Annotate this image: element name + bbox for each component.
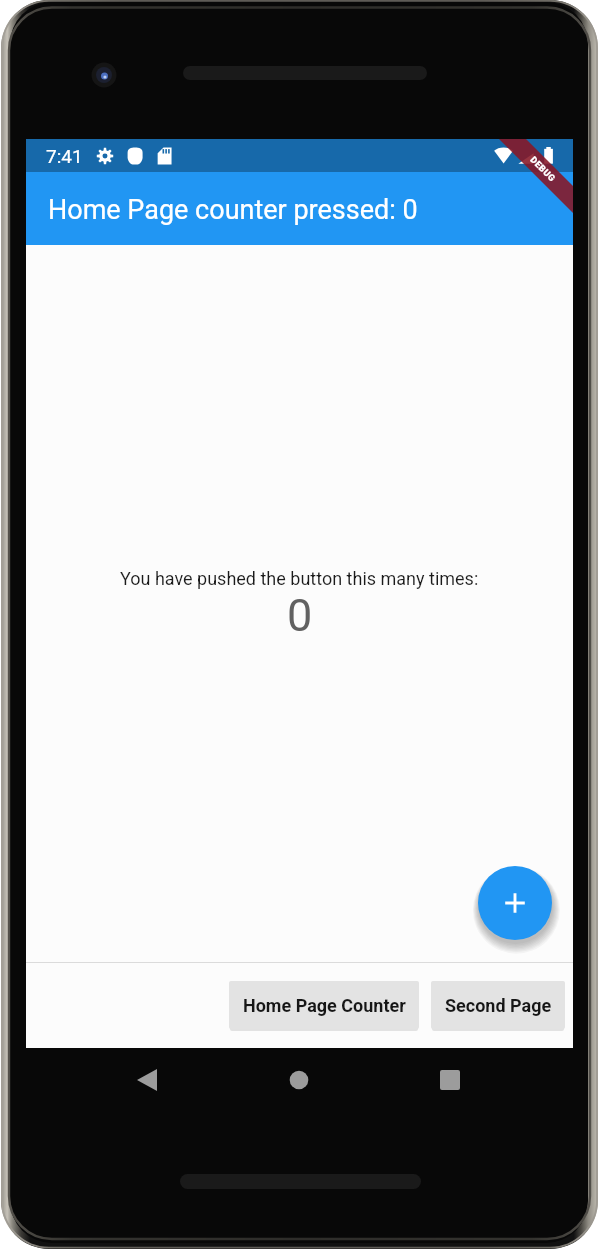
button[interactable]: Home Page Counter: [229, 981, 419, 1029]
button[interactable]: Increment: [478, 866, 552, 940]
staticText: 7:41: [46, 145, 83, 167]
staticText: 0: [287, 589, 313, 642]
staticText: You have pushed the button this many tim…: [120, 568, 479, 589]
staticText: Second Page: [445, 995, 552, 1016]
button[interactable]: Second Page: [431, 981, 565, 1029]
staticText: Home Page Counter: [243, 995, 406, 1016]
staticText: Home Page counter pressed: 0: [48, 194, 418, 226]
